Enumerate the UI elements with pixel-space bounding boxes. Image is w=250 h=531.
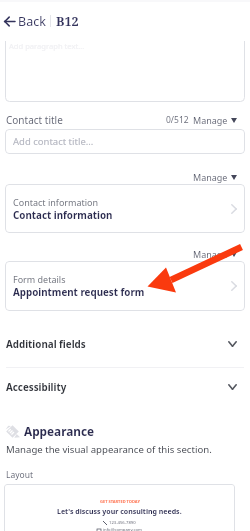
staticText: Add contact title...: [13, 135, 94, 148]
staticText: Add paragraph text...: [9, 41, 85, 51]
button[interactable]: Form details: [5, 261, 245, 311]
staticText: 123-456-7890: [109, 520, 136, 526]
staticText: Back: [18, 13, 46, 30]
button[interactable]: Manage: [193, 169, 237, 185]
staticText: Form details: [13, 273, 66, 285]
staticText: Layout: [6, 469, 34, 481]
staticText: Contact information: [13, 196, 99, 208]
staticText: Manage the visual appearance of this sec…: [6, 443, 212, 456]
button[interactable]: Manage: [193, 112, 237, 128]
staticText: B12: [56, 13, 79, 30]
staticText: Manage: [193, 171, 228, 183]
button[interactable]: Manage: [193, 246, 237, 262]
staticText: Accessibility: [6, 381, 67, 394]
staticText: 0/512: [166, 114, 189, 126]
staticText: Manage: [193, 248, 228, 260]
button[interactable]: Contact information: [5, 184, 245, 233]
staticText: Contact title: [6, 113, 63, 127]
staticText: Let's discuss your consulting needs.: [57, 507, 182, 517]
staticText: info@company.com: [103, 527, 142, 531]
staticText: Appearance: [24, 423, 95, 439]
button[interactable]: GET STARTED TODAY: [4, 484, 235, 531]
button[interactable]: Back: [0, 9, 48, 34]
button[interactable]: Add contact title...: [5, 129, 245, 154]
button[interactable]: Accessibility: [0, 374, 250, 400]
staticText: Contact information: [13, 209, 113, 222]
staticText: Manage: [193, 114, 228, 126]
staticText: Appointment request form: [13, 286, 145, 299]
staticText: Additional fields: [6, 338, 86, 351]
staticText: GET STARTED TODAY: [100, 499, 140, 504]
button[interactable]: Additional fields: [0, 331, 250, 357]
